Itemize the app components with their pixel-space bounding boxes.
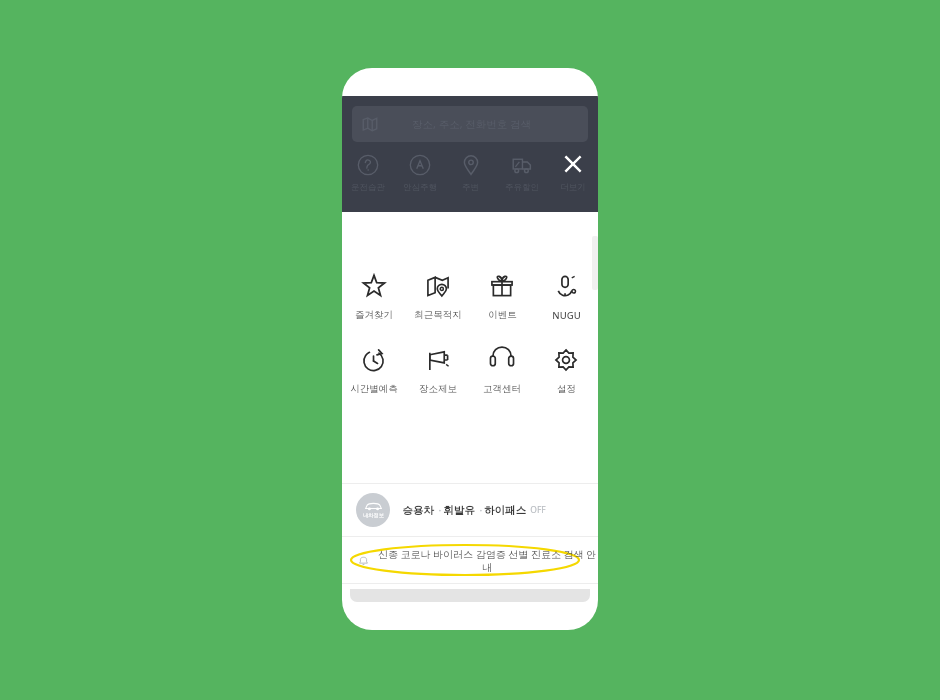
staticText: OFF [530, 504, 546, 516]
staticText: 즐겨찾기 [355, 309, 393, 321]
button[interactable]: 내차정보 [342, 484, 598, 536]
staticText: 내차정보 [363, 512, 384, 519]
staticText: 시간별예측 [350, 383, 398, 395]
button[interactable]: 주유할인 [496, 150, 547, 206]
button[interactable]: 설정 [534, 348, 598, 395]
staticText: 이벤트 [488, 309, 517, 321]
staticText: 신종 코로나 바이러스 감염증 선별 진료소 검색 안내 [376, 547, 598, 574]
staticText: 설정 [557, 383, 576, 395]
button[interactable]: 시간별예측 [342, 348, 406, 395]
staticText: 승용차 [402, 504, 434, 517]
staticText: 장소제보 [419, 383, 457, 395]
button[interactable]: 더보기 [547, 150, 598, 206]
button[interactable]: 최근목적지 [406, 274, 470, 321]
button[interactable]: 고객센터 [470, 348, 534, 395]
staticText: · [434, 503, 443, 517]
button[interactable]: 신종 코로나 바이러스 감염증 선별 진료소 검색 안내 [342, 537, 598, 583]
button[interactable]: 이벤트 [470, 274, 534, 321]
button[interactable]: NUGU [534, 274, 598, 322]
staticText: NUGU [552, 309, 581, 322]
button[interactable]: 즐겨찾기 [342, 274, 406, 321]
button[interactable]: 장소제보 [406, 348, 470, 395]
staticText: 하이패스 [484, 504, 526, 517]
staticText: 장소, 주소, 전화번호 검색 [412, 117, 531, 131]
button[interactable]: 주변 [445, 150, 496, 206]
button[interactable]: 안심주행 [394, 150, 445, 206]
staticText: 최근목적지 [414, 309, 462, 321]
staticText: 주변 [462, 182, 479, 193]
staticText: · [475, 503, 484, 517]
staticText: 더보기 [560, 182, 586, 193]
staticText: 고객센터 [483, 383, 521, 395]
staticText: 안심주행 [403, 182, 437, 193]
staticText: 휘발유 [443, 504, 475, 517]
staticText: 주유할인 [505, 182, 539, 193]
button[interactable]: 운전습관 [342, 150, 394, 206]
staticText: 운전습관 [351, 182, 385, 193]
